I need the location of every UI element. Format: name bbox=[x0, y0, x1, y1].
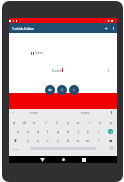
staticText: Esami bbox=[52, 68, 64, 74]
button[interactable]: Clear bbox=[69, 85, 79, 95]
staticText: 5 bbox=[58, 120, 60, 123]
staticText: k bbox=[87, 129, 89, 134]
button[interactable]: Expand bbox=[104, 66, 112, 74]
staticText: d bbox=[37, 129, 40, 134]
staticText: 6 bbox=[69, 120, 71, 123]
button[interactable]: k bbox=[83, 127, 93, 136]
staticText: 4 bbox=[47, 120, 49, 123]
button[interactable]: Voice input bbox=[57, 85, 67, 95]
staticText: r bbox=[45, 120, 47, 125]
staticText: j bbox=[78, 129, 79, 134]
button[interactable]: b bbox=[63, 136, 73, 145]
staticText: o bbox=[99, 120, 102, 125]
button[interactable]: d bbox=[33, 127, 43, 136]
button[interactable]: i bbox=[84, 118, 95, 127]
button[interactable]: More options bbox=[110, 23, 116, 33]
button[interactable]: ? bbox=[93, 136, 104, 145]
staticText: n bbox=[77, 138, 80, 143]
button[interactable]: m bbox=[83, 136, 93, 145]
staticText: x bbox=[37, 138, 39, 143]
staticText: g bbox=[57, 129, 60, 134]
staticText: , bbox=[26, 147, 27, 151]
button[interactable]: g bbox=[53, 127, 63, 136]
staticText: i bbox=[89, 120, 90, 125]
button[interactable]: esame bbox=[81, 111, 90, 115]
button[interactable]: q bbox=[9, 118, 19, 127]
staticText: ? bbox=[98, 138, 100, 143]
button[interactable]: Keyboard options bbox=[109, 110, 114, 115]
button[interactable]: x bbox=[33, 136, 43, 145]
button[interactable]: w bbox=[19, 118, 29, 127]
button[interactable]: Comma bbox=[22, 144, 30, 153]
staticText: 8 bbox=[91, 120, 93, 123]
staticText: y bbox=[67, 120, 69, 125]
staticText: v bbox=[57, 138, 59, 143]
button[interactable]: c bbox=[43, 136, 53, 145]
staticText: b bbox=[67, 138, 70, 143]
button[interactable]: n bbox=[73, 136, 83, 145]
button[interactable]: z bbox=[22, 136, 33, 145]
button[interactable]: o bbox=[95, 118, 106, 127]
button[interactable]: Emoji bbox=[106, 144, 117, 153]
button[interactable]: t bbox=[51, 118, 62, 127]
staticText: c bbox=[47, 138, 49, 143]
staticText: h bbox=[67, 129, 70, 134]
staticText: . bbox=[101, 147, 102, 151]
staticText: Turkish-Italian bbox=[12, 26, 35, 30]
button[interactable]: r bbox=[40, 118, 51, 127]
staticText: 1 bbox=[15, 120, 17, 123]
button[interactable]: e bbox=[29, 118, 40, 127]
button[interactable]: y bbox=[62, 118, 73, 127]
staticText: 2 bbox=[25, 120, 27, 123]
button[interactable]: Sound bbox=[103, 23, 110, 33]
staticText: z bbox=[27, 138, 29, 143]
button[interactable]: f bbox=[43, 127, 53, 136]
staticText: u bbox=[77, 120, 80, 125]
button[interactable]: h bbox=[63, 127, 73, 136]
staticText: 7 bbox=[80, 120, 82, 123]
staticText: l bbox=[98, 129, 99, 134]
button[interactable]: Back bbox=[35, 156, 49, 163]
staticText: Italian bbox=[35, 51, 44, 55]
button[interactable]: Recents bbox=[77, 156, 91, 163]
staticText: 0 bbox=[113, 120, 115, 123]
button[interactable]: esami bbox=[30, 111, 38, 115]
button[interactable]: s bbox=[23, 127, 33, 136]
staticText: t bbox=[56, 120, 58, 125]
button[interactable]: u bbox=[73, 118, 84, 127]
button[interactable]: l bbox=[93, 127, 103, 136]
button[interactable]: ?123 bbox=[9, 144, 22, 153]
staticText: a bbox=[17, 129, 20, 134]
staticText: m bbox=[86, 138, 90, 143]
staticText: 9 bbox=[102, 120, 104, 123]
button[interactable]: p bbox=[106, 118, 117, 127]
button[interactable]: Italian bbox=[31, 51, 44, 55]
button[interactable]: v bbox=[53, 136, 63, 145]
button[interactable]: j bbox=[73, 127, 83, 136]
staticText: f bbox=[47, 129, 49, 134]
button[interactable]: Camera bbox=[45, 85, 55, 95]
staticText: q bbox=[13, 120, 16, 125]
button[interactable]: a bbox=[14, 127, 23, 136]
button[interactable]: Search bbox=[103, 127, 117, 136]
staticText: ?123 bbox=[13, 147, 19, 150]
staticText: w bbox=[23, 120, 26, 125]
staticText: e bbox=[33, 120, 36, 125]
button[interactable]: Expand toolbar bbox=[10, 110, 15, 115]
button[interactable]: Play pronunciation bbox=[56, 82, 64, 90]
button[interactable]: Home bbox=[56, 156, 70, 163]
staticText: p bbox=[110, 120, 113, 125]
button[interactable]: Shift bbox=[9, 136, 22, 145]
staticText: 3 bbox=[36, 120, 38, 123]
button[interactable]: Backspace bbox=[104, 136, 117, 145]
staticText: s bbox=[27, 129, 29, 134]
